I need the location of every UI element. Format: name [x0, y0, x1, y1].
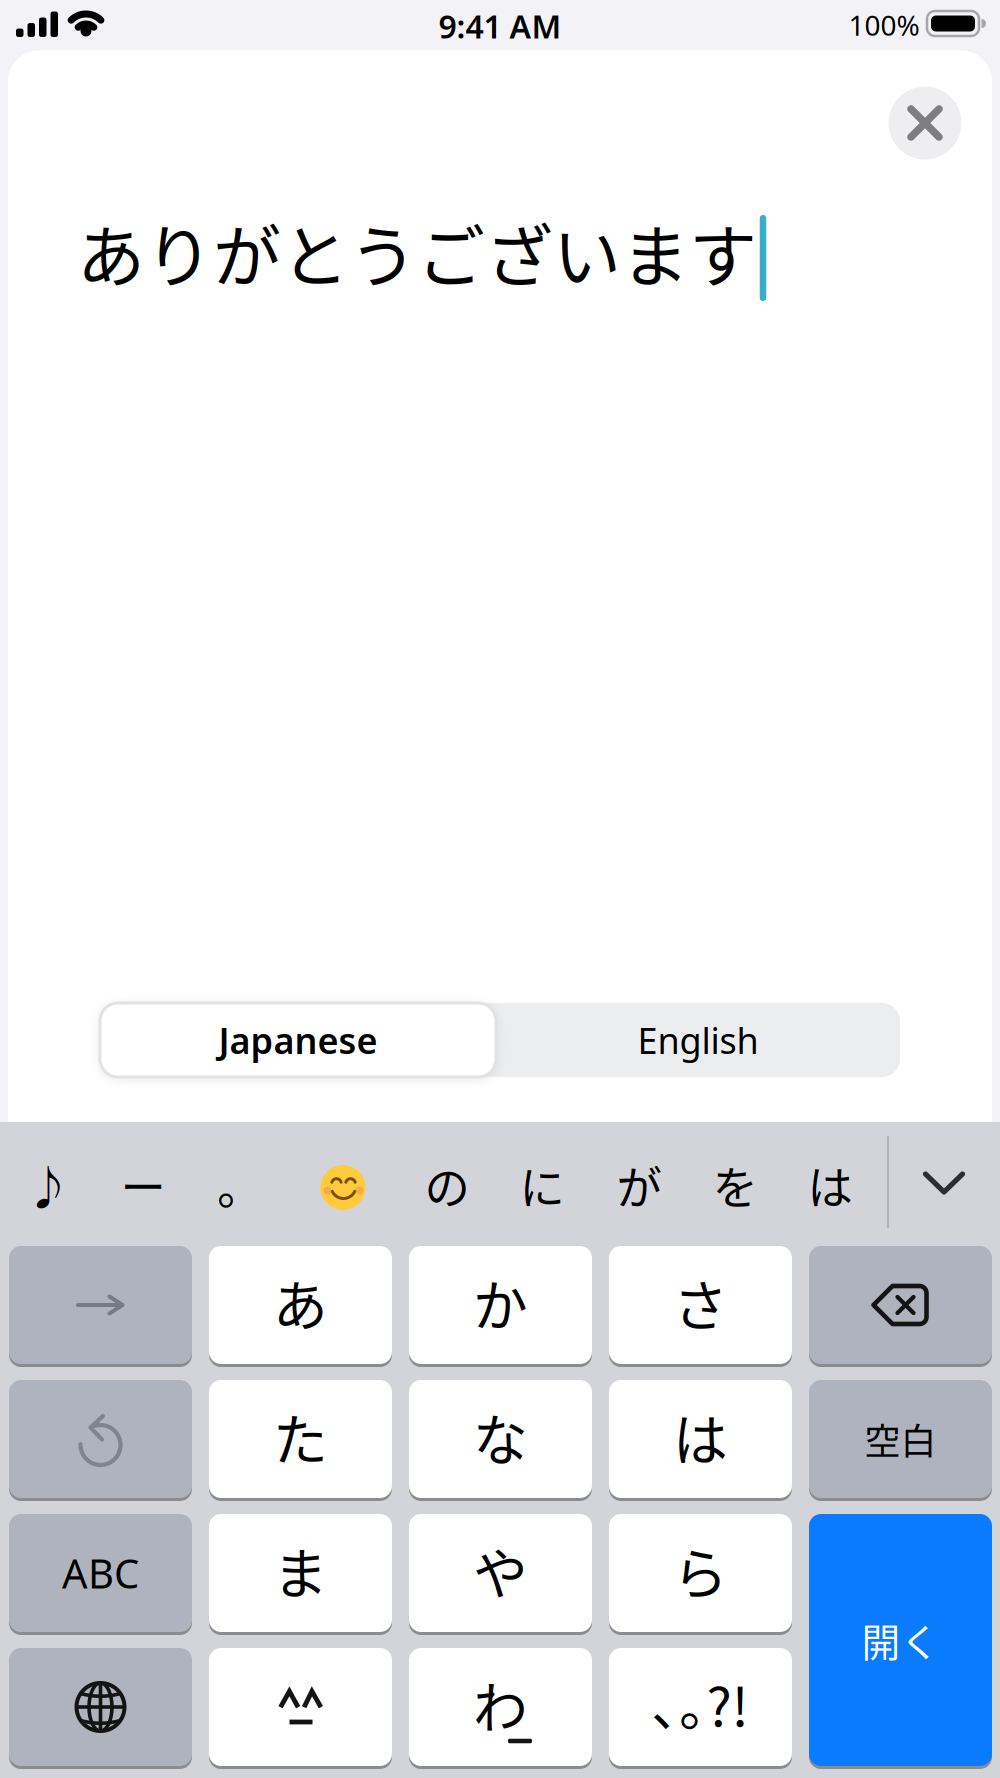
button[interactable]: Undo	[9, 1380, 192, 1498]
staticText: English	[637, 1016, 758, 1064]
button[interactable]: ー	[120, 1140, 165, 1230]
staticText: ありがとうございます	[77, 203, 757, 301]
button[interactable]: の	[424, 1140, 469, 1230]
button[interactable]	[809, 1380, 992, 1498]
button[interactable]	[409, 1380, 592, 1498]
staticText: 9:41 AM	[438, 5, 561, 47]
button[interactable]	[409, 1514, 592, 1632]
button[interactable]	[609, 1380, 792, 1498]
button[interactable]: ♪	[25, 1140, 70, 1230]
staticText: を	[712, 1152, 757, 1218]
staticText: あ	[273, 1262, 328, 1342]
button[interactable]: ｡	[217, 1140, 240, 1230]
staticText: Japanese	[218, 1016, 377, 1064]
staticText: ー	[120, 1152, 165, 1218]
staticText: は	[673, 1396, 728, 1476]
button[interactable]	[409, 1648, 592, 1766]
button[interactable]	[9, 1514, 192, 1632]
button[interactable]	[609, 1648, 792, 1766]
staticText: な	[473, 1396, 528, 1476]
button[interactable]: Japanese	[100, 1003, 496, 1077]
staticText: わ	[473, 1664, 528, 1744]
staticText: や	[473, 1530, 528, 1610]
staticText: さ	[673, 1262, 728, 1342]
button[interactable]	[609, 1246, 792, 1364]
staticText: 開く	[861, 1612, 939, 1668]
button[interactable]: Close	[888, 86, 961, 159]
button[interactable]	[209, 1380, 392, 1498]
staticText: ら	[673, 1530, 728, 1610]
button[interactable]: Hide suggestions	[909, 1148, 979, 1218]
staticText: は	[807, 1152, 852, 1218]
button[interactable]: が	[616, 1140, 661, 1230]
button[interactable]	[609, 1514, 792, 1632]
button[interactable]: Next keyboard	[9, 1648, 192, 1766]
staticText: ま	[273, 1530, 328, 1610]
button[interactable]: に	[519, 1140, 564, 1230]
button[interactable]: 😊	[320, 1164, 366, 1210]
button[interactable]	[209, 1514, 392, 1632]
staticText: 100%	[848, 6, 919, 44]
staticText: 空白	[864, 1413, 936, 1465]
button[interactable]	[809, 1514, 992, 1766]
button[interactable]: English	[500, 1003, 896, 1077]
button[interactable]	[209, 1246, 392, 1364]
staticText: た	[273, 1396, 328, 1476]
staticText: ､｡?!	[652, 1664, 748, 1742]
staticText: に	[519, 1152, 564, 1218]
staticText: ♪	[25, 1152, 70, 1218]
button[interactable]: を	[712, 1140, 757, 1230]
button[interactable]	[409, 1246, 592, 1364]
button[interactable]: Cursor right	[9, 1246, 192, 1364]
staticText: ABC	[62, 1546, 139, 1599]
staticText: が	[616, 1152, 661, 1218]
button[interactable]: Kaomoji	[209, 1648, 392, 1766]
button[interactable]: Delete	[809, 1246, 992, 1364]
staticText: ｡	[217, 1152, 240, 1218]
button[interactable]: は	[807, 1140, 852, 1230]
staticText: の	[424, 1152, 469, 1218]
staticText: か	[473, 1262, 528, 1342]
